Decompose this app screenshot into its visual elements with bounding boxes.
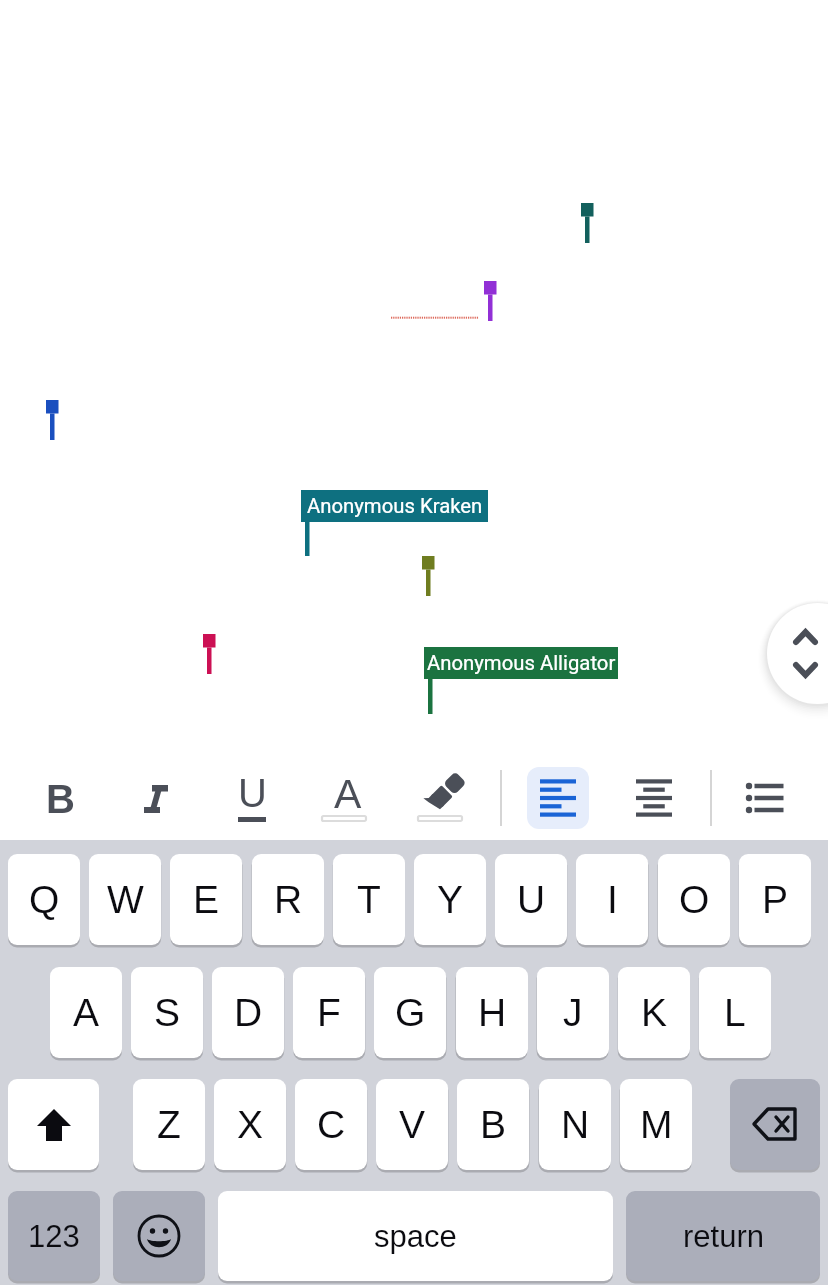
staticText: Q (29, 878, 60, 922)
staticText: D (234, 991, 263, 1035)
button[interactable]: S (131, 967, 203, 1058)
button[interactable]: Return (626, 1191, 820, 1281)
button[interactable]: O (658, 854, 730, 945)
staticText: K (641, 991, 668, 1035)
button[interactable]: Text colour (317, 767, 379, 829)
staticText: O (679, 878, 710, 922)
staticText: B (46, 777, 75, 822)
staticText: return (683, 1219, 764, 1254)
button[interactable]: F (293, 967, 365, 1058)
button[interactable]: E (170, 854, 242, 945)
button[interactable]: C (295, 1079, 367, 1170)
staticText: G (395, 991, 426, 1035)
staticText: X (237, 1103, 264, 1147)
button[interactable]: Align left (527, 767, 589, 829)
button[interactable]: Bulleted list (733, 767, 795, 829)
button[interactable]: K (618, 967, 690, 1058)
button[interactable]: H (456, 967, 528, 1058)
staticText: Anonymous Kraken (307, 494, 483, 518)
button[interactable]: J (537, 967, 609, 1058)
button[interactable]: Underline (221, 767, 283, 829)
button[interactable]: Scroll up or down (767, 603, 828, 704)
button[interactable]: Align centre (623, 767, 685, 829)
staticText: E (193, 878, 220, 922)
button[interactable]: V (376, 1079, 448, 1170)
staticText: Anonymous Alligator (427, 651, 616, 675)
staticText: U (517, 878, 546, 922)
staticText: I (607, 878, 618, 922)
button[interactable]: Y (414, 854, 486, 945)
button[interactable]: A (50, 967, 122, 1058)
staticText: F (317, 991, 341, 1035)
staticText: B (480, 1103, 507, 1147)
button[interactable]: L (699, 967, 771, 1058)
button[interactable]: B (457, 1079, 529, 1170)
button[interactable]: M (620, 1079, 692, 1170)
staticText: W (107, 878, 144, 922)
button[interactable]: T (333, 854, 405, 945)
button[interactable]: Space (218, 1191, 613, 1281)
button[interactable]: P (739, 854, 811, 945)
button[interactable]: Z (133, 1079, 205, 1170)
staticText: A (334, 771, 362, 817)
button[interactable]: Emoji (113, 1191, 205, 1281)
staticText: space (374, 1219, 457, 1254)
staticText: 123 (28, 1219, 80, 1254)
staticText: U (238, 771, 267, 816)
staticText: S (154, 991, 181, 1035)
button[interactable]: X (214, 1079, 286, 1170)
button[interactable]: Shift (8, 1079, 99, 1170)
staticText: C (317, 1103, 346, 1147)
button[interactable]: G (374, 967, 446, 1058)
button[interactable]: D (212, 967, 284, 1058)
button[interactable]: Numbers (8, 1191, 100, 1281)
button[interactable]: W (89, 854, 161, 945)
staticText: V (399, 1103, 426, 1147)
button[interactable]: R (252, 854, 324, 945)
staticText: Z (157, 1103, 181, 1147)
button[interactable]: Anonymous Alligator (424, 647, 618, 679)
button[interactable]: Backspace (730, 1079, 820, 1170)
button[interactable]: Bold (29, 767, 91, 829)
staticText: M (640, 1103, 673, 1147)
button[interactable]: Italic (125, 767, 187, 829)
button[interactable]: Q (8, 854, 80, 945)
staticText: A (73, 991, 100, 1035)
staticText: Y (437, 878, 464, 922)
button[interactable]: N (539, 1079, 611, 1170)
staticText: P (762, 878, 789, 922)
staticText: H (478, 991, 507, 1035)
staticText: L (724, 991, 746, 1035)
staticText: R (274, 878, 303, 922)
staticText: J (563, 991, 583, 1035)
button[interactable]: I (576, 854, 648, 945)
staticText: T (357, 878, 381, 922)
staticText: N (561, 1103, 590, 1147)
button[interactable]: Highlight (413, 767, 475, 829)
button[interactable]: Anonymous Kraken (301, 490, 488, 522)
button[interactable]: U (495, 854, 567, 945)
